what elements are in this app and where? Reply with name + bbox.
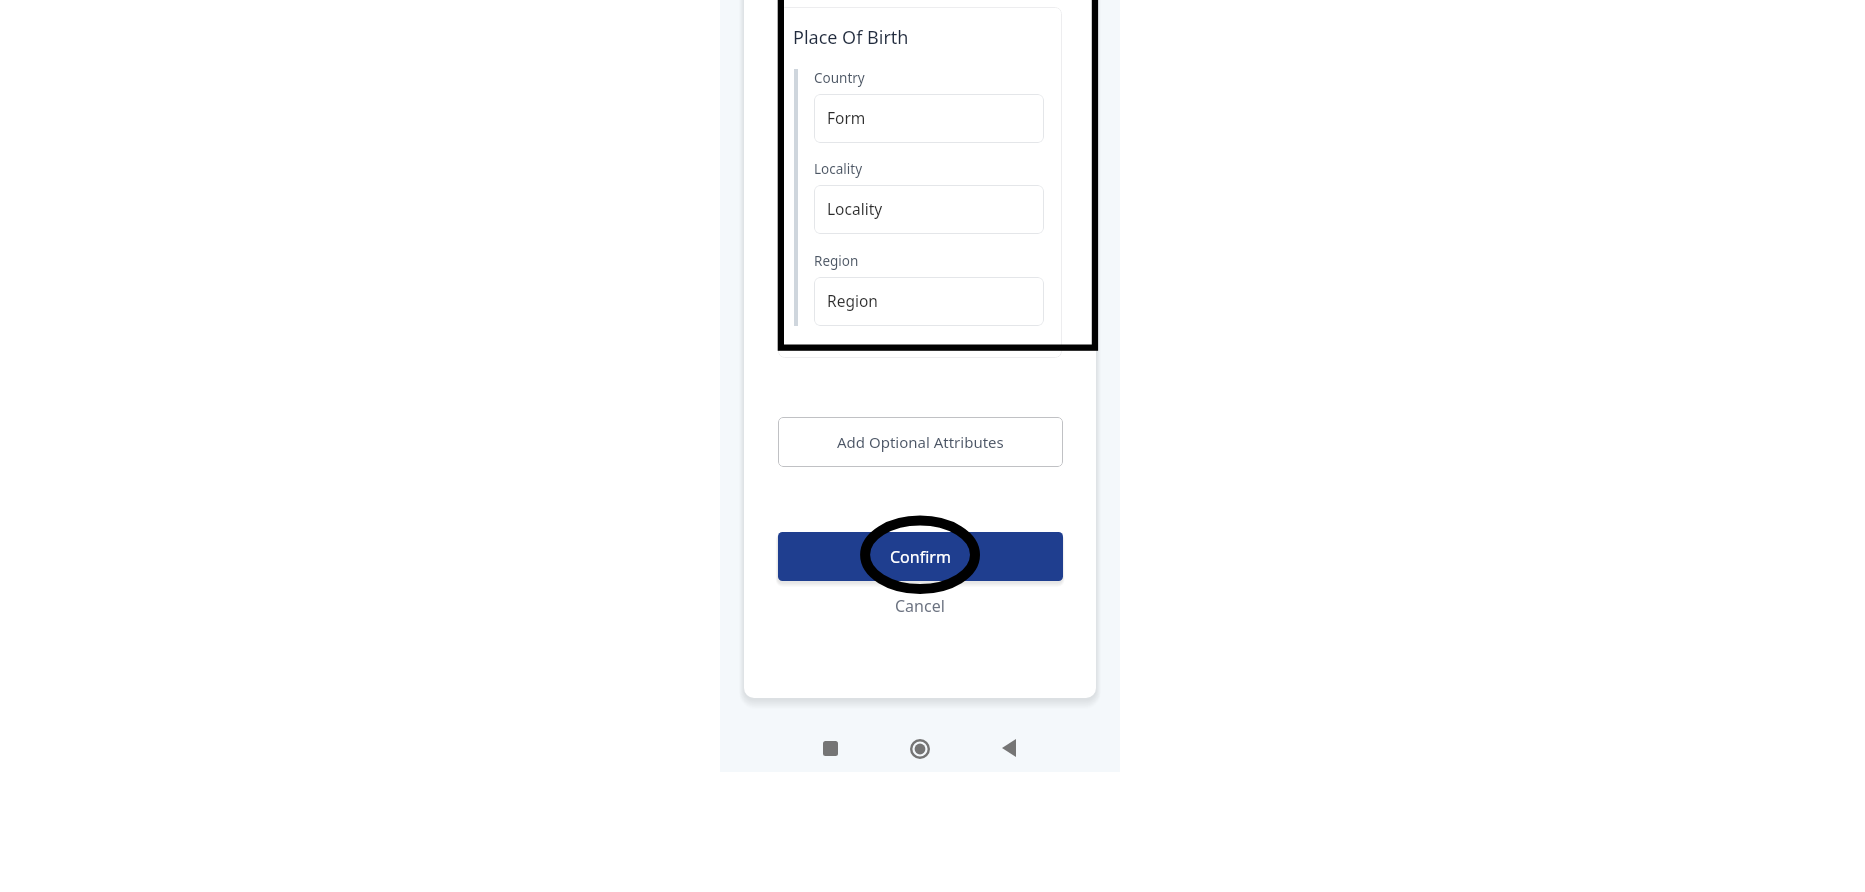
button[interactable]: Back	[987, 726, 1031, 770]
staticText: Confirm	[890, 546, 951, 568]
staticText: Place Of Birth	[793, 25, 909, 50]
button[interactable]: Confirm	[778, 532, 1063, 581]
staticText: Form	[827, 107, 866, 128]
staticText: Region	[827, 290, 878, 311]
button[interactable]: Home	[898, 727, 942, 771]
button[interactable]: Locality	[814, 185, 1044, 234]
button[interactable]: Form	[814, 94, 1044, 143]
staticText: Region	[814, 252, 859, 270]
staticText: Country	[814, 69, 865, 87]
button[interactable]: Region	[814, 277, 1044, 326]
button[interactable]: Recent apps	[808, 726, 852, 770]
staticText: Add Optional Attributes	[837, 432, 1004, 452]
button[interactable]: Cancel	[880, 594, 960, 618]
button[interactable]: Add Optional Attributes	[778, 417, 1063, 467]
staticText: Locality	[814, 160, 863, 178]
staticText: Locality	[827, 198, 883, 219]
staticText: Cancel	[895, 595, 945, 617]
